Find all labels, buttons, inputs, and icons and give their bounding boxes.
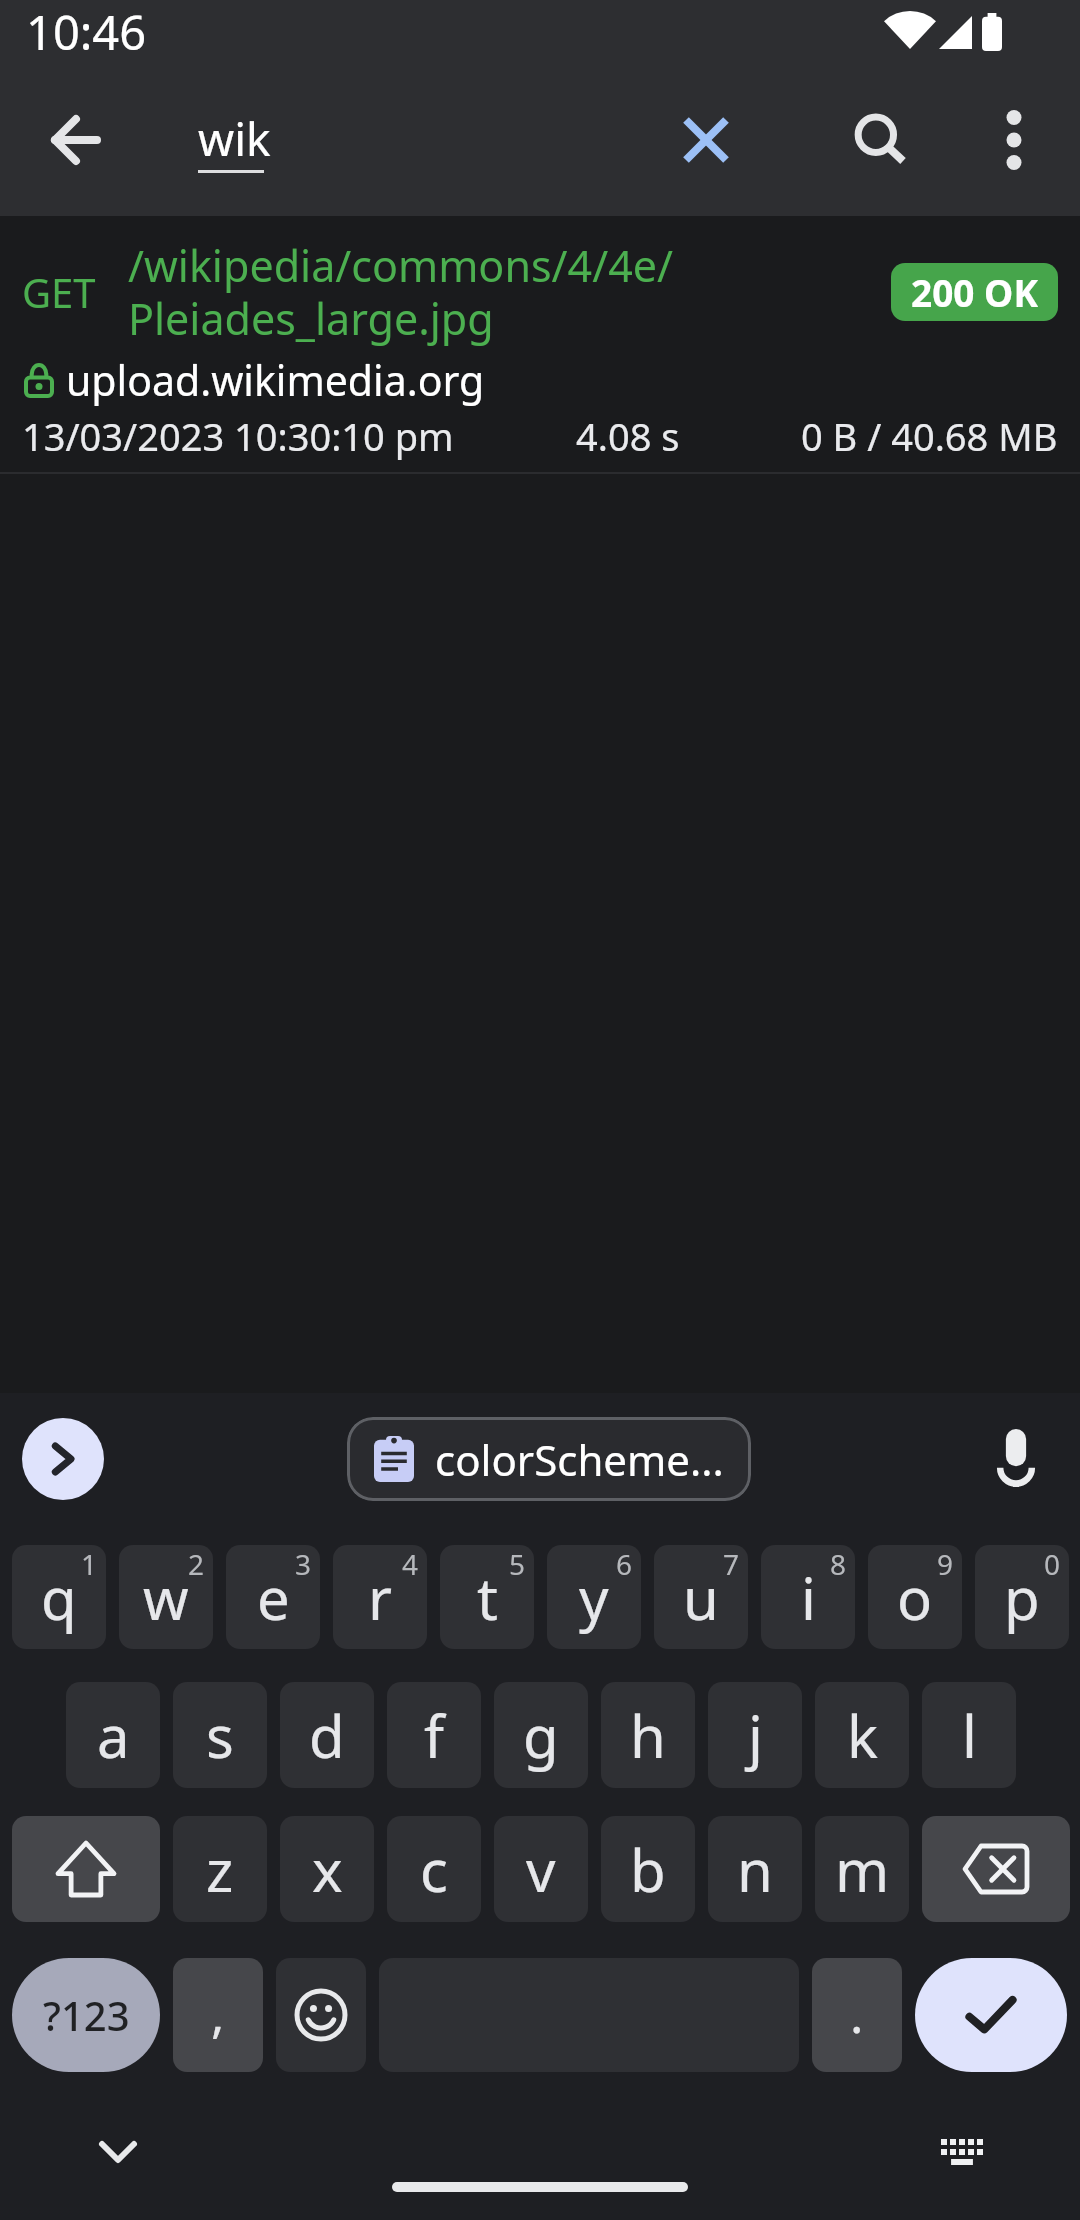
staticText: ?123 — [43, 1988, 130, 2042]
staticText: 10:46 — [26, 0, 147, 64]
button[interactable]: r — [333, 1545, 427, 1649]
staticText: h — [630, 1696, 666, 1775]
staticText: 13/03/2023 10:30:10 pm — [22, 410, 454, 462]
staticText: x — [312, 1830, 343, 1909]
staticText: 6 — [616, 1545, 633, 1583]
button[interactable]: g — [494, 1682, 588, 1788]
button[interactable] — [986, 1429, 1046, 1489]
button[interactable]: b — [601, 1816, 695, 1922]
button[interactable]: j — [708, 1682, 802, 1788]
button[interactable]: k — [815, 1682, 909, 1788]
button[interactable]: , — [173, 1958, 263, 2072]
staticText: l — [962, 1696, 977, 1775]
staticText: 4.08 s — [576, 410, 680, 462]
button[interactable] — [984, 110, 1044, 170]
button[interactable]: w — [119, 1545, 213, 1649]
button[interactable]: t — [440, 1545, 534, 1649]
staticText: q — [41, 1558, 77, 1637]
button[interactable]: c — [387, 1816, 481, 1922]
staticText: 5 — [509, 1545, 526, 1583]
button[interactable]: x — [280, 1816, 374, 1922]
staticText: s — [206, 1696, 234, 1775]
button[interactable]: q — [12, 1545, 106, 1649]
staticText: 1 — [81, 1545, 98, 1583]
staticText: z — [206, 1830, 234, 1909]
button[interactable]: z — [173, 1816, 267, 1922]
staticText: 9 — [937, 1545, 954, 1583]
staticText: m — [835, 1830, 890, 1909]
button[interactable] — [88, 2132, 148, 2172]
button[interactable]: u — [654, 1545, 748, 1649]
staticText: 4 — [402, 1545, 419, 1583]
staticText: b — [630, 1830, 666, 1909]
button[interactable] — [934, 2132, 990, 2172]
button[interactable]: v — [494, 1816, 588, 1922]
staticText: k — [847, 1696, 878, 1775]
button[interactable]: n — [708, 1816, 802, 1922]
staticText: colorScheme... — [435, 1431, 724, 1488]
staticText: /wikipedia/commons/4/4e/ Pleiades_large.… — [128, 236, 673, 347]
staticText: 8 — [830, 1545, 847, 1583]
button[interactable]: p — [975, 1545, 1069, 1649]
button[interactable]: a — [66, 1682, 160, 1788]
button[interactable] — [40, 104, 112, 176]
staticText: i — [801, 1558, 816, 1637]
button[interactable] — [670, 104, 742, 176]
staticText: n — [737, 1830, 773, 1909]
staticText: c — [420, 1830, 448, 1909]
button[interactable]: e — [226, 1545, 320, 1649]
button[interactable]: colorScheme... — [347, 1417, 751, 1501]
staticText: o — [897, 1558, 933, 1637]
staticText: f — [424, 1696, 444, 1775]
button[interactable] — [844, 104, 916, 176]
staticText: y — [579, 1558, 609, 1637]
staticText: a — [97, 1696, 130, 1775]
button[interactable]: i — [761, 1545, 855, 1649]
button[interactable]: o — [868, 1545, 962, 1649]
staticText: p — [1004, 1558, 1040, 1637]
staticText: 0 B / 40.68 MB — [801, 410, 1058, 462]
staticText: 3 — [295, 1545, 312, 1583]
button[interactable] — [22, 1418, 104, 1500]
staticText: 200 OK — [911, 267, 1038, 317]
button[interactable]: . — [812, 1958, 902, 2072]
staticText: d — [309, 1696, 345, 1775]
button[interactable] — [915, 1958, 1067, 2072]
staticText: v — [526, 1830, 556, 1909]
button[interactable]: m — [815, 1816, 909, 1922]
button[interactable]: y — [547, 1545, 641, 1649]
staticText: GET — [22, 265, 96, 319]
button[interactable]: f — [387, 1682, 481, 1788]
button[interactable]: h — [601, 1682, 695, 1788]
button[interactable]: s — [173, 1682, 267, 1788]
button[interactable] — [922, 1816, 1070, 1922]
staticText: 2 — [188, 1545, 205, 1583]
staticText: wik — [198, 107, 271, 170]
staticText: 7 — [723, 1545, 740, 1583]
staticText: w — [143, 1558, 189, 1637]
button[interactable] — [276, 1958, 366, 2072]
button[interactable]: l — [922, 1682, 1016, 1788]
staticText: 0 — [1044, 1545, 1061, 1583]
staticText: . — [850, 1980, 864, 2048]
button[interactable]: d — [280, 1682, 374, 1788]
staticText: r — [368, 1558, 392, 1637]
staticText: , — [211, 1980, 225, 2048]
staticText: upload.wikimedia.org — [66, 352, 485, 408]
button[interactable]: GET — [0, 216, 1080, 474]
staticText: u — [683, 1558, 719, 1637]
staticText: j — [748, 1696, 763, 1775]
button[interactable] — [12, 1816, 160, 1922]
staticText: e — [257, 1558, 290, 1637]
staticText: t — [477, 1558, 498, 1637]
button[interactable]: ?123 — [12, 1958, 160, 2072]
staticText: g — [523, 1696, 559, 1775]
